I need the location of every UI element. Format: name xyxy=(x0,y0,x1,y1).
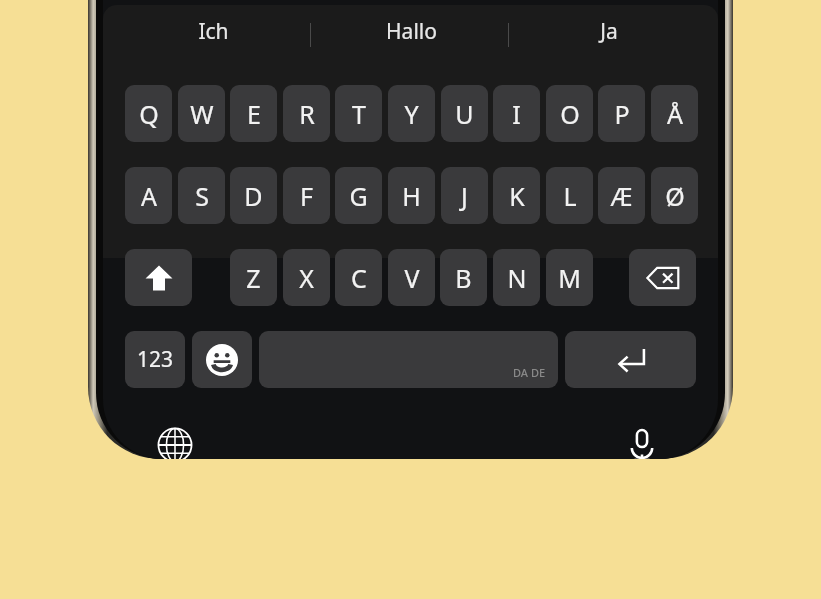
staticText: K xyxy=(509,179,525,213)
button[interactable]: I xyxy=(493,85,540,142)
button[interactable]: L xyxy=(546,167,593,224)
staticText: E xyxy=(247,97,261,131)
staticText: R xyxy=(299,97,315,131)
button[interactable]: Emoji xyxy=(192,331,252,388)
button[interactable]: Z xyxy=(230,249,277,306)
button[interactable]: H xyxy=(388,167,435,224)
staticText: 123 xyxy=(137,345,174,374)
button[interactable]: R xyxy=(283,85,330,142)
staticText: H xyxy=(402,179,421,213)
button[interactable]: U xyxy=(441,85,488,142)
button[interactable]: Space xyxy=(259,331,558,388)
button[interactable]: Change keyboard language xyxy=(148,418,202,459)
button[interactable]: 123 xyxy=(125,331,185,388)
staticText: P xyxy=(614,97,630,131)
staticText: I xyxy=(512,97,521,131)
button[interactable]: Ja xyxy=(519,10,699,52)
button[interactable]: N xyxy=(493,249,540,306)
staticText: N xyxy=(507,261,527,295)
staticText: Hallo xyxy=(386,17,437,46)
staticText: M xyxy=(558,261,581,295)
staticText: Å xyxy=(667,97,683,131)
button[interactable]: B xyxy=(440,249,487,306)
staticText: Z xyxy=(246,261,261,295)
staticText: W xyxy=(190,97,214,131)
button[interactable]: J xyxy=(441,167,488,224)
button[interactable]: X xyxy=(283,249,330,306)
staticText: Ja xyxy=(600,17,618,46)
button[interactable]: W xyxy=(178,85,225,142)
button[interactable]: C xyxy=(335,249,382,306)
button[interactable]: F xyxy=(283,167,330,224)
staticText: Q xyxy=(139,97,159,131)
staticText: V xyxy=(404,261,420,295)
button[interactable]: E xyxy=(230,85,277,142)
button[interactable]: Å xyxy=(651,85,698,142)
staticText: Ø xyxy=(665,179,685,213)
button[interactable]: Return xyxy=(565,331,696,388)
staticText: Ich xyxy=(198,17,229,46)
button[interactable]: Hallo xyxy=(321,10,501,52)
staticText: G xyxy=(349,179,368,213)
button[interactable]: Ich xyxy=(123,10,303,52)
staticText: D xyxy=(244,179,263,213)
button[interactable]: Æ xyxy=(598,167,645,224)
button[interactable]: Q xyxy=(125,85,172,142)
button[interactable]: Shift xyxy=(125,249,192,306)
button[interactable]: G xyxy=(335,167,382,224)
button[interactable]: O xyxy=(546,85,593,142)
staticText: F xyxy=(300,179,313,213)
staticText: DA DE xyxy=(513,365,546,380)
button[interactable]: Backspace xyxy=(629,249,696,306)
button[interactable]: Voice input xyxy=(615,418,669,459)
staticText: C xyxy=(351,261,367,295)
button[interactable]: M xyxy=(546,249,593,306)
button[interactable]: Y xyxy=(388,85,435,142)
staticText: J xyxy=(461,179,468,213)
staticText: B xyxy=(455,261,472,295)
button[interactable]: Ø xyxy=(651,167,698,224)
button[interactable]: P xyxy=(598,85,645,142)
staticText: X xyxy=(299,261,314,295)
button[interactable]: A xyxy=(125,167,172,224)
staticText: L xyxy=(563,179,577,213)
staticText: U xyxy=(455,97,474,131)
button[interactable]: K xyxy=(493,167,540,224)
staticText: A xyxy=(141,179,157,213)
button[interactable]: D xyxy=(230,167,277,224)
staticText: Y xyxy=(404,97,419,131)
button[interactable]: S xyxy=(178,167,225,224)
staticText: T xyxy=(352,97,366,131)
staticText: S xyxy=(195,179,209,213)
button[interactable]: T xyxy=(335,85,382,142)
staticText: Æ xyxy=(610,179,633,213)
button[interactable]: V xyxy=(388,249,435,306)
staticText: O xyxy=(560,97,580,131)
